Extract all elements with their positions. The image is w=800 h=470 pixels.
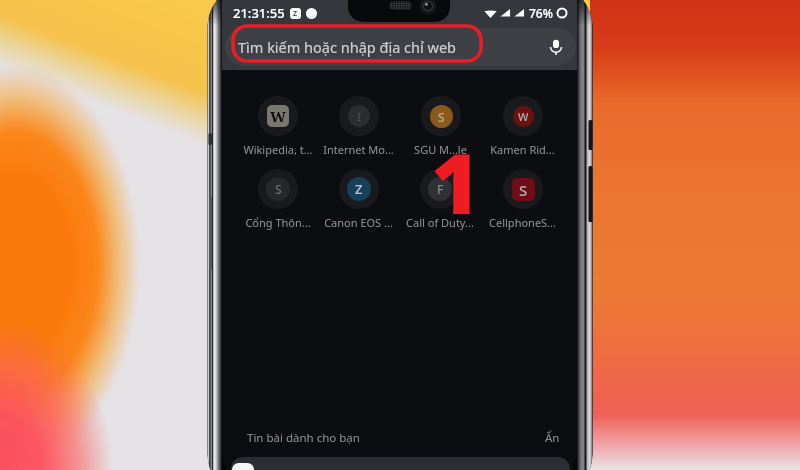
button[interactable]: Ẩn <box>545 430 560 446</box>
staticText: Call of Duty... <box>406 215 474 230</box>
staticText: SGU M...le <box>414 142 467 157</box>
staticText: I <box>357 109 361 124</box>
staticText: W <box>518 109 529 124</box>
button[interactable]: S <box>399 96 481 169</box>
button[interactable]: Tìm kiếm hoặc nhập địa chỉ web <box>225 28 576 66</box>
staticText: S <box>275 181 282 197</box>
staticText: 76% <box>529 5 553 21</box>
staticText: W <box>270 106 287 126</box>
staticText: Cổng Thôn... <box>245 215 311 230</box>
button[interactable]: S <box>237 169 318 242</box>
staticText: Z <box>293 9 298 19</box>
staticText: F <box>437 181 444 197</box>
staticText: Canon EOS ... <box>324 215 393 230</box>
staticText: Kamen Rid... <box>490 142 555 157</box>
staticText: 21:31:55 <box>233 4 285 22</box>
staticText: 1 <box>431 124 481 238</box>
staticText: Wikipedia, t... <box>243 142 313 157</box>
staticText: Tìm kiếm hoặc nhập địa chỉ web <box>238 37 456 57</box>
button[interactable]: W <box>237 96 318 169</box>
staticText: S <box>519 180 528 200</box>
button[interactable]: I <box>318 96 399 169</box>
button[interactable] <box>231 457 570 470</box>
button[interactable]: Voice search <box>545 36 567 58</box>
staticText: S <box>438 109 445 125</box>
button[interactable]: Z <box>318 169 399 242</box>
staticText: CellphoneS... <box>489 215 556 230</box>
button[interactable]: S <box>481 169 563 242</box>
staticText: Tin bài dành cho bạn <box>247 430 360 446</box>
staticText: Ẩn <box>545 430 560 446</box>
button[interactable]: F <box>399 169 481 242</box>
staticText: Z <box>355 180 363 198</box>
button[interactable]: W <box>481 96 563 169</box>
staticText: Internet Mo... <box>323 142 394 157</box>
